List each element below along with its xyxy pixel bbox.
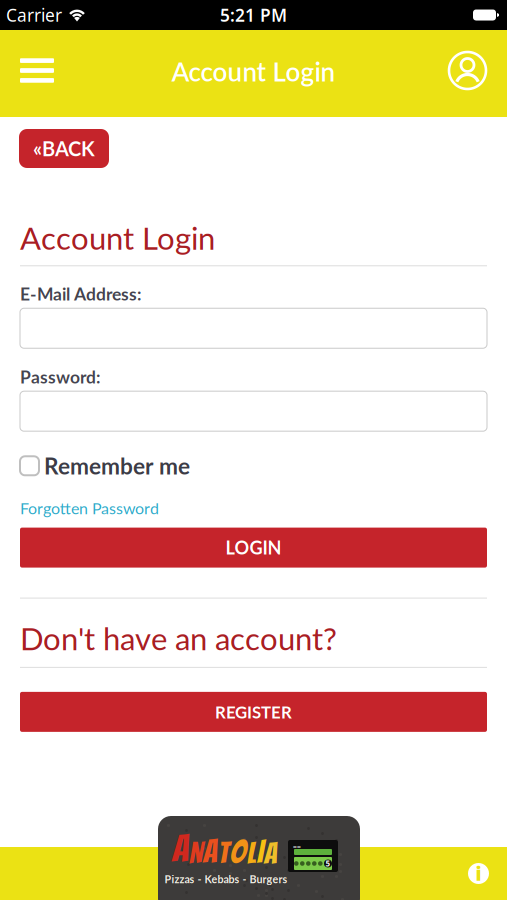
staticText: Account Login xyxy=(171,56,335,87)
staticText: 5:21 PM xyxy=(220,3,287,26)
staticText: N xyxy=(189,838,202,869)
staticText: 5 xyxy=(325,858,330,869)
button[interactable]: «BACK xyxy=(19,129,109,168)
staticText: Account Login xyxy=(20,219,215,256)
button[interactable]: Menu xyxy=(0,58,54,83)
staticText: Carrier xyxy=(6,3,62,26)
staticText: O xyxy=(230,835,246,869)
staticText: Don't have an account? xyxy=(20,620,337,657)
staticText: i xyxy=(475,861,481,886)
button[interactable]: Forgotten Password xyxy=(0,479,159,518)
staticText: A xyxy=(264,838,277,869)
button[interactable]: LOGIN xyxy=(20,528,487,568)
staticText: A xyxy=(172,829,188,869)
staticText: REGISTER xyxy=(215,702,292,722)
staticText: A xyxy=(203,835,217,869)
staticText: I xyxy=(257,835,263,869)
staticText: Remember me xyxy=(44,452,190,479)
staticText: E-Mail Address: xyxy=(20,283,141,304)
staticText: L xyxy=(247,838,256,869)
button[interactable]: Account xyxy=(449,52,507,89)
button[interactable]: Remember me xyxy=(0,431,190,479)
button[interactable]: REGISTER xyxy=(20,692,487,732)
staticText: Pizzas - Kebabs - Burgers xyxy=(164,873,287,885)
staticText: Password: xyxy=(20,366,100,387)
staticText: T xyxy=(218,838,229,869)
staticText: LOGIN xyxy=(225,537,281,558)
staticText: == xyxy=(293,842,301,851)
staticText: Forgotten Password xyxy=(20,498,159,518)
staticText: «BACK xyxy=(33,136,95,160)
button[interactable]: Info xyxy=(468,861,507,886)
